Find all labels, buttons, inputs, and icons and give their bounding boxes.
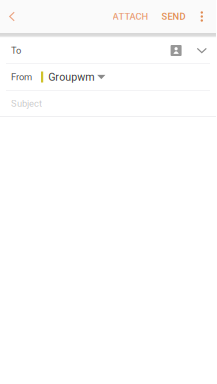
staticText: Groupwm <box>48 71 94 83</box>
staticText: From <box>11 71 32 82</box>
staticText: ATTACH <box>113 11 149 22</box>
button[interactable]: Add contact <box>165 40 188 61</box>
button[interactable]: From <box>0 64 216 90</box>
staticText: SEND <box>162 11 186 22</box>
button[interactable]: Expand recipient list <box>188 42 211 59</box>
button[interactable]: More options <box>193 0 216 33</box>
button[interactable]: Back <box>0 0 27 33</box>
staticText: Subject <box>11 98 42 109</box>
staticText: To <box>11 45 21 56</box>
button[interactable]: ATTACH <box>107 0 155 33</box>
button[interactable]: SEND <box>155 0 193 33</box>
